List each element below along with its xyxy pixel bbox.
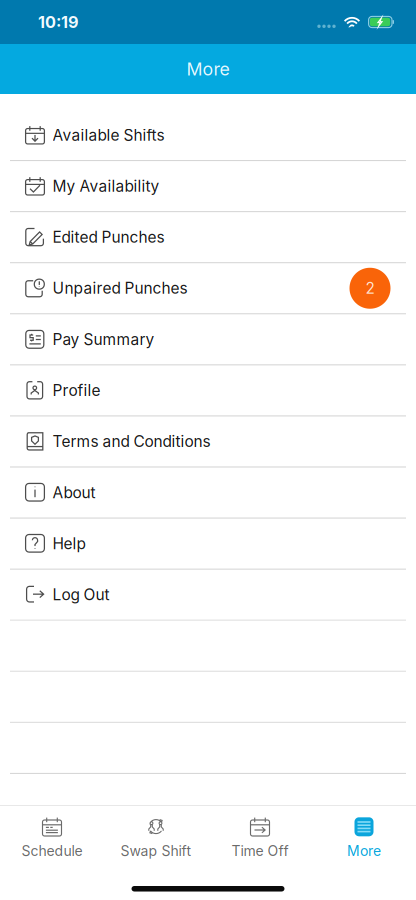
staticText: Time Off (231, 842, 288, 859)
button[interactable]: Available Shifts (0, 110, 416, 161)
staticText: Edited Punches (52, 228, 164, 246)
staticText: 2 (365, 279, 374, 298)
button[interactable]: Unpaired Punches (0, 263, 416, 314)
button[interactable]: My Availability (0, 161, 416, 212)
button[interactable]: Time Off (208, 817, 312, 857)
staticText: Help (52, 534, 85, 553)
staticText: My Availability (52, 177, 159, 195)
button[interactable]: Log Out (0, 570, 416, 621)
staticText: Schedule (21, 842, 82, 859)
staticText: More (347, 842, 381, 859)
button[interactable]: Pay Summary (0, 314, 416, 365)
staticText: More (186, 58, 229, 80)
staticText: Terms and Conditions (52, 432, 210, 451)
staticText: 10:19 (38, 12, 79, 32)
button[interactable]: More (312, 817, 416, 857)
button[interactable]: Terms and Conditions (0, 416, 416, 467)
staticText: Unpaired Punches (52, 279, 187, 298)
button[interactable]: Swap Shift (104, 817, 208, 857)
staticText: About (52, 483, 95, 502)
button[interactable]: Edited Punches (0, 212, 416, 263)
button[interactable]: Profile (0, 365, 416, 416)
button[interactable]: Schedule (0, 817, 104, 857)
staticText: Pay Summary (52, 330, 154, 349)
staticText: Log Out (52, 585, 109, 604)
staticText: Swap Shift (120, 842, 191, 859)
staticText: Available Shifts (52, 126, 164, 144)
button[interactable]: About (0, 467, 416, 519)
button[interactable]: Help (0, 519, 416, 570)
staticText: Profile (52, 381, 100, 400)
